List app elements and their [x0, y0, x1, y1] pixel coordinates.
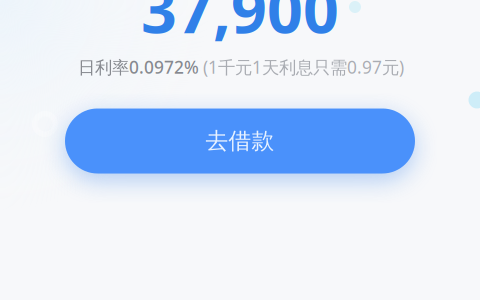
staticText: 日利率0.0972% [78, 55, 199, 78]
button[interactable]: 去借款 [65, 108, 415, 173]
staticText: 去借款 [205, 127, 274, 155]
staticText: (1千元1天利息只需0.97元) [203, 55, 404, 78]
staticText: 37,900 [141, 0, 339, 51]
